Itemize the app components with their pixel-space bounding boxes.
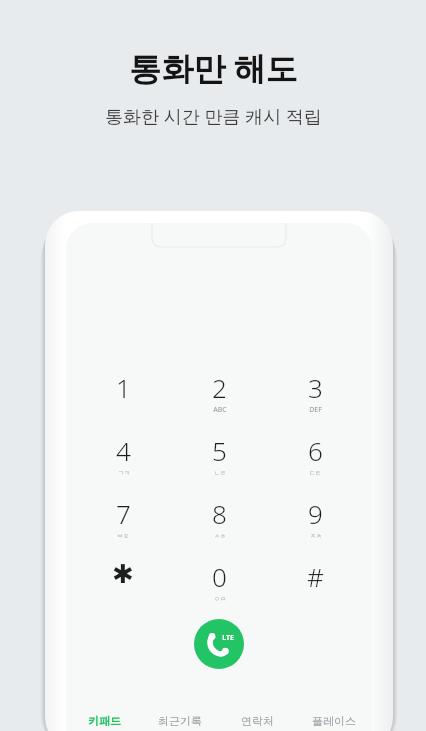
staticText: ㅇㅁ bbox=[214, 595, 226, 603]
button[interactable]: Key 2 bbox=[180, 370, 258, 414]
staticText: 연락처 bbox=[241, 714, 274, 728]
button[interactable]: 최근기록 bbox=[142, 703, 218, 731]
staticText: 1 bbox=[116, 370, 131, 405]
button[interactable]: Key 0 bbox=[180, 559, 258, 603]
button[interactable]: Key 8 bbox=[180, 496, 258, 540]
button[interactable]: 키패드 bbox=[66, 703, 142, 731]
button[interactable]: 연락처 bbox=[218, 703, 295, 731]
staticText: 통화만 해도 bbox=[129, 46, 298, 90]
button[interactable]: Key 3 bbox=[276, 370, 354, 414]
staticText: ㅅㅎ bbox=[214, 532, 226, 540]
button[interactable]: Key ✱ bbox=[84, 559, 162, 603]
button[interactable]: 플레이스 bbox=[295, 703, 372, 731]
button[interactable]: Key 9 bbox=[276, 496, 354, 540]
staticText: DEF bbox=[309, 405, 322, 414]
staticText: ㅈㅊ bbox=[310, 532, 322, 540]
staticText: ㄴㄹ bbox=[214, 469, 226, 477]
staticText: LTE bbox=[222, 633, 234, 643]
button[interactable]: Key # bbox=[276, 559, 354, 603]
button[interactable]: Key 1 bbox=[84, 370, 162, 414]
staticText: ✱ bbox=[112, 559, 134, 589]
button[interactable]: Key 6 bbox=[276, 433, 354, 477]
staticText: 8 bbox=[212, 496, 227, 531]
button[interactable]: Key 5 bbox=[180, 433, 258, 477]
button[interactable]: Call bbox=[194, 619, 244, 669]
staticText: 4 bbox=[116, 433, 131, 468]
staticText: # bbox=[307, 559, 324, 594]
button[interactable]: Key 7 bbox=[84, 496, 162, 540]
staticText: 2 bbox=[212, 370, 227, 405]
staticText: ㅂㅍ bbox=[117, 532, 129, 540]
staticText: 통화한 시간 만큼 캐시 적립 bbox=[105, 104, 322, 129]
staticText: 0 bbox=[212, 559, 227, 594]
staticText: 9 bbox=[308, 496, 323, 531]
staticText: ㄱㅋ bbox=[118, 469, 130, 477]
staticText: 키패드 bbox=[88, 714, 121, 728]
staticText: 5 bbox=[212, 433, 227, 468]
staticText: 최근기록 bbox=[158, 714, 202, 728]
staticText: ABC bbox=[213, 405, 227, 414]
staticText: 6 bbox=[308, 433, 323, 468]
staticText: ㄷㅌ bbox=[309, 469, 321, 477]
staticText: 플레이스 bbox=[312, 714, 356, 728]
button[interactable]: Key 4 bbox=[84, 433, 162, 477]
staticText: 7 bbox=[116, 496, 131, 531]
staticText: 3 bbox=[308, 370, 323, 405]
